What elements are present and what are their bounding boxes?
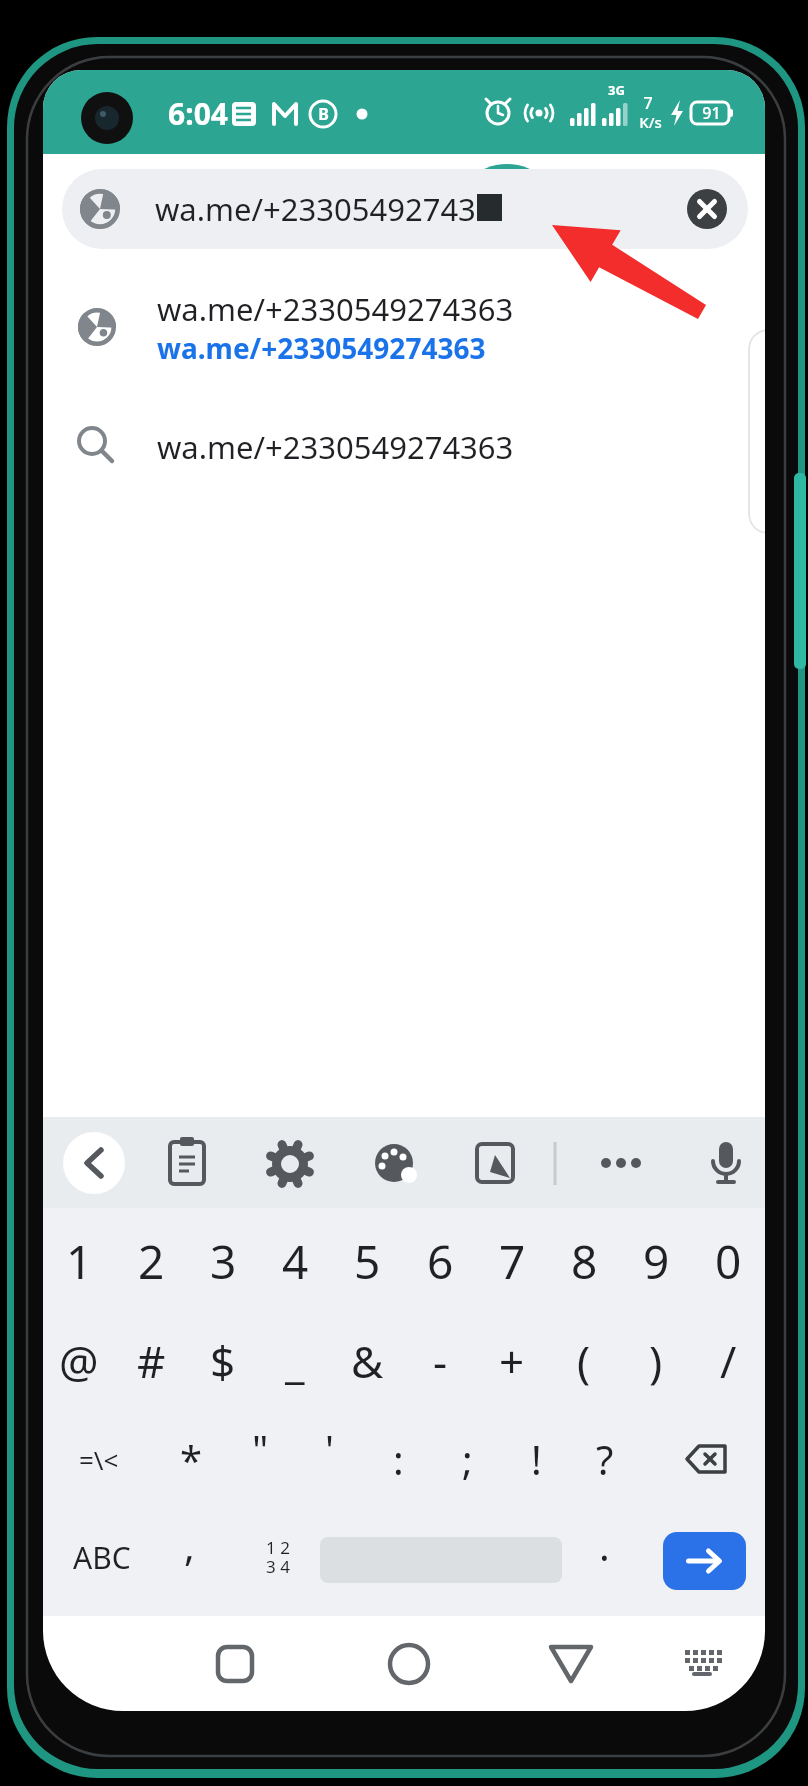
button[interactable] (664, 1626, 740, 1702)
button[interactable] (663, 1532, 746, 1590)
staticText: B (318, 103, 329, 125)
button[interactable]: * (159, 1413, 223, 1505)
button[interactable]: ; (435, 1413, 499, 1505)
button[interactable] (591, 1133, 651, 1193)
staticText: 1 2 3 4 (266, 1536, 290, 1578)
staticText: : (393, 1432, 404, 1486)
button[interactable]: : (366, 1413, 430, 1505)
staticText: # (137, 1331, 166, 1391)
button[interactable] (157, 1133, 217, 1193)
staticText: wa.me/+2330549274363 (157, 329, 486, 367)
button[interactable] (63, 1132, 125, 1194)
button[interactable]: ' (297, 1413, 361, 1505)
staticText: 6 (427, 1230, 454, 1293)
staticText: ' (325, 1422, 334, 1476)
button[interactable]: ) (621, 1315, 691, 1407)
button[interactable] (43, 270, 765, 382)
staticText: 0 (715, 1230, 742, 1293)
button[interactable]: 8 (549, 1215, 619, 1307)
button[interactable] (260, 1133, 320, 1193)
button[interactable] (364, 1133, 424, 1193)
staticText: _ (285, 1331, 305, 1391)
staticText: 9 (643, 1230, 670, 1293)
staticText: wa.me/+2330549274363 (157, 426, 514, 468)
button[interactable] (43, 400, 765, 495)
staticText: 3 (210, 1230, 237, 1293)
button[interactable]: =\< (51, 1413, 147, 1505)
staticText: 5 (354, 1230, 381, 1293)
button[interactable]: / (693, 1315, 763, 1407)
button[interactable] (465, 1133, 525, 1193)
button[interactable] (687, 189, 727, 229)
button[interactable] (197, 1626, 273, 1702)
staticText: * (180, 1432, 203, 1486)
button[interactable]: 9 (621, 1215, 691, 1307)
button[interactable]: & (332, 1315, 402, 1407)
staticText: . (599, 1518, 610, 1572)
button[interactable]: 4 (260, 1215, 330, 1307)
button[interactable]: ( (549, 1315, 619, 1407)
button[interactable]: @ (44, 1315, 114, 1407)
staticText: =\< (79, 1442, 119, 1477)
staticText: wa.me/+23305492743 (155, 188, 476, 230)
staticText: 3G (608, 81, 625, 99)
staticText: ( (577, 1331, 591, 1391)
staticText: + (499, 1331, 525, 1391)
staticText: 6:04 (168, 93, 228, 134)
button[interactable] (533, 1626, 609, 1702)
staticText: 2 (138, 1230, 165, 1293)
staticText: ? (596, 1432, 614, 1486)
button[interactable] (62, 169, 748, 249)
button[interactable]: 1 2 3 4 (246, 1511, 310, 1603)
staticText: / (720, 1331, 737, 1391)
staticText: K/s (639, 112, 662, 132)
staticText: - (433, 1331, 448, 1391)
staticText: $ (210, 1331, 236, 1391)
staticText: @ (59, 1331, 99, 1391)
button[interactable]: + (477, 1315, 547, 1407)
button[interactable] (696, 1133, 756, 1193)
button[interactable]: 5 (332, 1215, 402, 1307)
button[interactable]: 2 (116, 1215, 186, 1307)
staticText: 1 (66, 1230, 93, 1293)
staticText: " (252, 1422, 269, 1476)
button[interactable]: ! (504, 1413, 568, 1505)
button[interactable] (371, 1626, 447, 1702)
button[interactable]: 0 (693, 1215, 763, 1307)
staticText: 7 (643, 92, 653, 114)
button[interactable]: 7 (477, 1215, 547, 1307)
button[interactable]: 1 (44, 1215, 114, 1307)
staticText: 8 (571, 1230, 598, 1293)
staticText: & (351, 1331, 384, 1391)
staticText: ; (462, 1432, 473, 1486)
button[interactable]: " (228, 1413, 292, 1505)
staticText: 4 (282, 1230, 309, 1293)
staticText: , (184, 1518, 195, 1572)
staticText: wa.me/+2330549274363 (157, 288, 514, 330)
button[interactable]: ABC (54, 1511, 150, 1603)
button[interactable] (659, 1413, 755, 1505)
button[interactable]: $ (188, 1315, 258, 1407)
button[interactable]: - (405, 1315, 475, 1407)
button[interactable]: , (157, 1511, 221, 1603)
button[interactable]: # (116, 1315, 186, 1407)
button[interactable]: . (572, 1511, 636, 1603)
staticText: 7 (499, 1230, 526, 1293)
staticText: 91 (702, 102, 721, 124)
button[interactable]: 3 (188, 1215, 258, 1307)
button[interactable]: ? (573, 1413, 637, 1505)
staticText: ABC (73, 1537, 131, 1578)
button[interactable]: 6 (405, 1215, 475, 1307)
staticText: ! (531, 1432, 542, 1486)
staticText: ) (649, 1331, 663, 1391)
button[interactable]: _ (260, 1315, 330, 1407)
